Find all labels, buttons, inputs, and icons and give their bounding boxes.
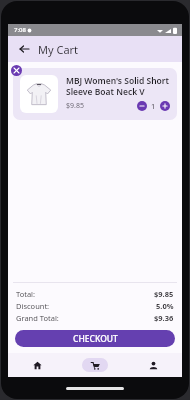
staticText: MBJ Women's Solid Short Sleeve Boat Neck…: [66, 75, 170, 97]
staticText: $9.36: [154, 313, 174, 323]
staticText: Grand Total:: [16, 313, 59, 323]
staticText: 7:08: [14, 26, 26, 34]
button[interactable]: Increase quantity: [160, 101, 170, 111]
button[interactable]: Remove item: [11, 65, 22, 76]
button[interactable]: Cart: [66, 353, 124, 377]
button[interactable]: CHECKOUT: [15, 330, 175, 347]
staticText: Total:: [16, 289, 36, 299]
staticText: $9.85: [154, 289, 174, 299]
staticText: $9.85: [66, 101, 84, 111]
button[interactable]: MBJ Women's Solid Short Sleeve Boat Neck…: [13, 68, 177, 120]
staticText: My Cart: [38, 42, 79, 57]
button[interactable]: Home: [8, 353, 66, 377]
button[interactable]: Back: [16, 41, 32, 57]
button[interactable]: Decrease quantity: [137, 101, 147, 111]
staticText: 5.0%: [156, 301, 174, 311]
staticText: CHECKOUT: [73, 333, 118, 345]
staticText: Discount:: [16, 301, 50, 311]
button[interactable]: Profile: [124, 353, 182, 377]
staticText: 1: [151, 101, 156, 111]
